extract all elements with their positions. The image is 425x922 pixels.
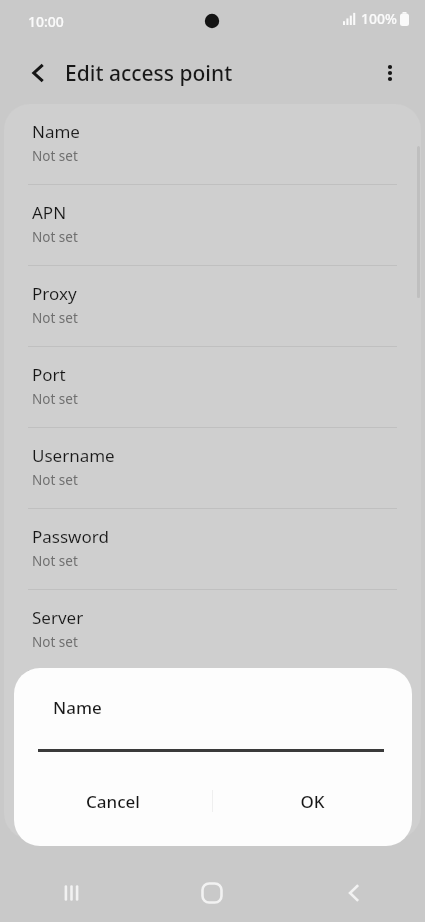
staticText: 100%: [361, 9, 397, 28]
button[interactable]: APN: [4, 185, 421, 266]
button[interactable]: Home: [141, 864, 283, 922]
staticText: MMSC: [32, 687, 83, 710]
button[interactable]: Port: [4, 347, 421, 428]
staticText: APN: [32, 201, 67, 224]
button[interactable]: MMSC: [4, 671, 421, 752]
button[interactable]: Recents: [0, 864, 141, 922]
staticText: Proxy: [32, 282, 77, 305]
button[interactable]: OK: [213, 773, 412, 829]
staticText: Not set: [32, 309, 78, 327]
staticText: Edit access point: [65, 59, 233, 88]
staticText: Name: [53, 696, 102, 719]
staticText: Username: [32, 444, 115, 467]
staticText: Not set: [32, 552, 78, 570]
staticText: Server: [32, 606, 84, 629]
staticText: Not set: [32, 228, 78, 246]
button[interactable]: Cancel: [14, 773, 212, 829]
staticText: Password: [32, 525, 109, 548]
button[interactable]: Back: [283, 864, 425, 922]
button[interactable]: MMS port: [4, 833, 421, 839]
button[interactable]: Name: [4, 104, 421, 185]
staticText: Name: [32, 120, 80, 143]
staticText: OK: [300, 790, 325, 813]
staticText: Not set: [32, 471, 78, 489]
button[interactable]: More options: [369, 52, 411, 94]
button[interactable]: Password: [4, 509, 421, 590]
staticText: Not set: [32, 147, 78, 165]
staticText: 10:00: [28, 12, 64, 31]
button[interactable]: Back: [18, 53, 58, 93]
button[interactable]: Username: [4, 428, 421, 509]
staticText: Cancel: [86, 790, 140, 813]
button[interactable]: Proxy: [4, 266, 421, 347]
staticText: Not set: [32, 633, 78, 651]
button[interactable]: MMS proxy: [4, 752, 421, 833]
staticText: Port: [32, 363, 66, 386]
button[interactable]: Server: [4, 590, 421, 671]
staticText: Not set: [32, 390, 78, 408]
